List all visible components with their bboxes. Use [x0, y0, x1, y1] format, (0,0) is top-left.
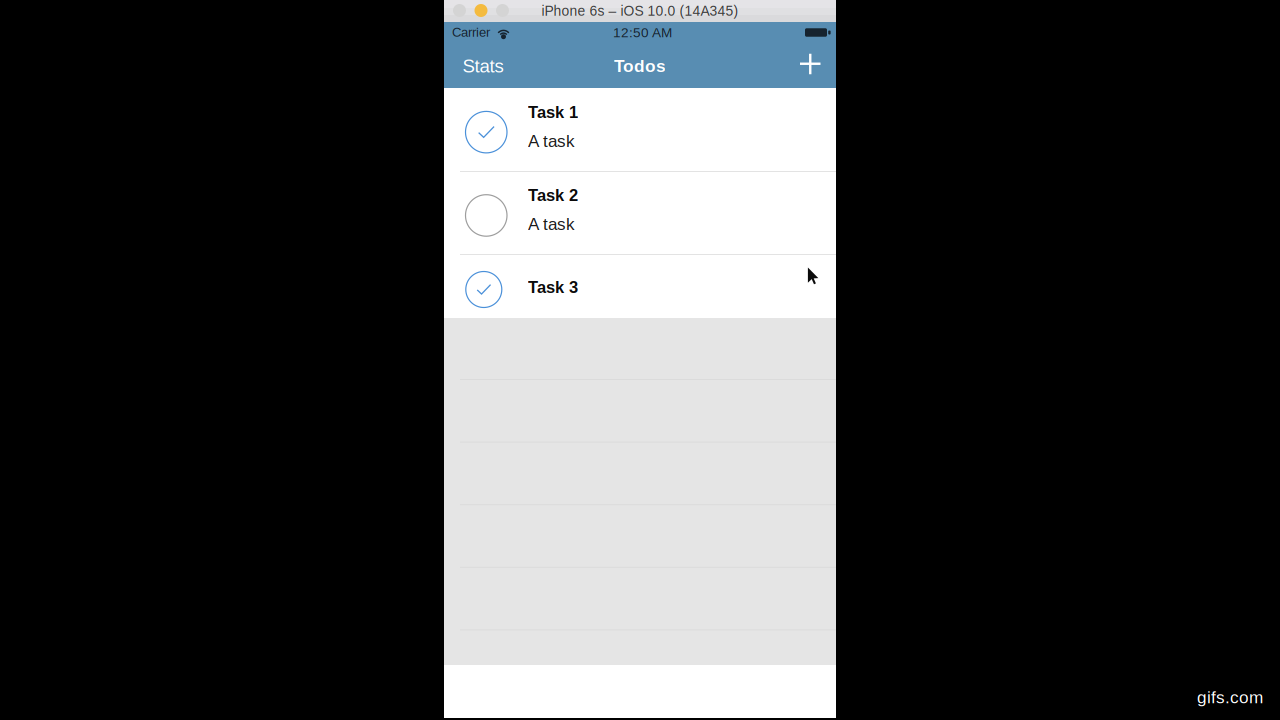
staticText: Task 3	[528, 278, 578, 296]
staticText: A task	[528, 214, 575, 234]
staticText: iPhone 6s – iOS 10.0 (14A345)	[541, 3, 738, 19]
button[interactable]: Stats	[444, 44, 524, 88]
staticText: gifs.com	[1197, 688, 1263, 707]
staticText: Task 1	[528, 103, 578, 121]
button[interactable]: Task 2	[444, 172, 836, 255]
button[interactable]: Add todo	[788, 44, 832, 88]
staticText: Stats	[462, 56, 503, 76]
staticText: A task	[528, 131, 575, 151]
staticText: Task 2	[528, 186, 578, 204]
staticText: Carrier	[452, 25, 490, 40]
button[interactable]: Task 3	[444, 255, 836, 318]
button[interactable]: Task 1	[444, 88, 836, 172]
staticText: Todos	[614, 56, 666, 76]
staticText: 12:50 AM	[613, 25, 672, 40]
